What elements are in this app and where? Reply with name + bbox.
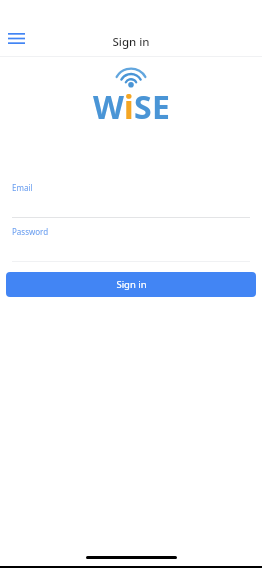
button[interactable]: Email	[0, 178, 262, 218]
staticText: S	[134, 85, 152, 129]
button[interactable]: Password	[0, 222, 262, 262]
button[interactable]: Sign in	[6, 272, 256, 297]
staticText: E	[152, 85, 170, 129]
staticText: Sign in	[116, 278, 147, 291]
staticText: W	[93, 85, 124, 129]
staticText: Password	[12, 226, 49, 237]
staticText: Email	[12, 182, 33, 193]
button[interactable]: Open navigation menu	[0, 25, 32, 51]
staticText: i	[124, 85, 134, 129]
staticText: Sign in	[112, 34, 150, 50]
